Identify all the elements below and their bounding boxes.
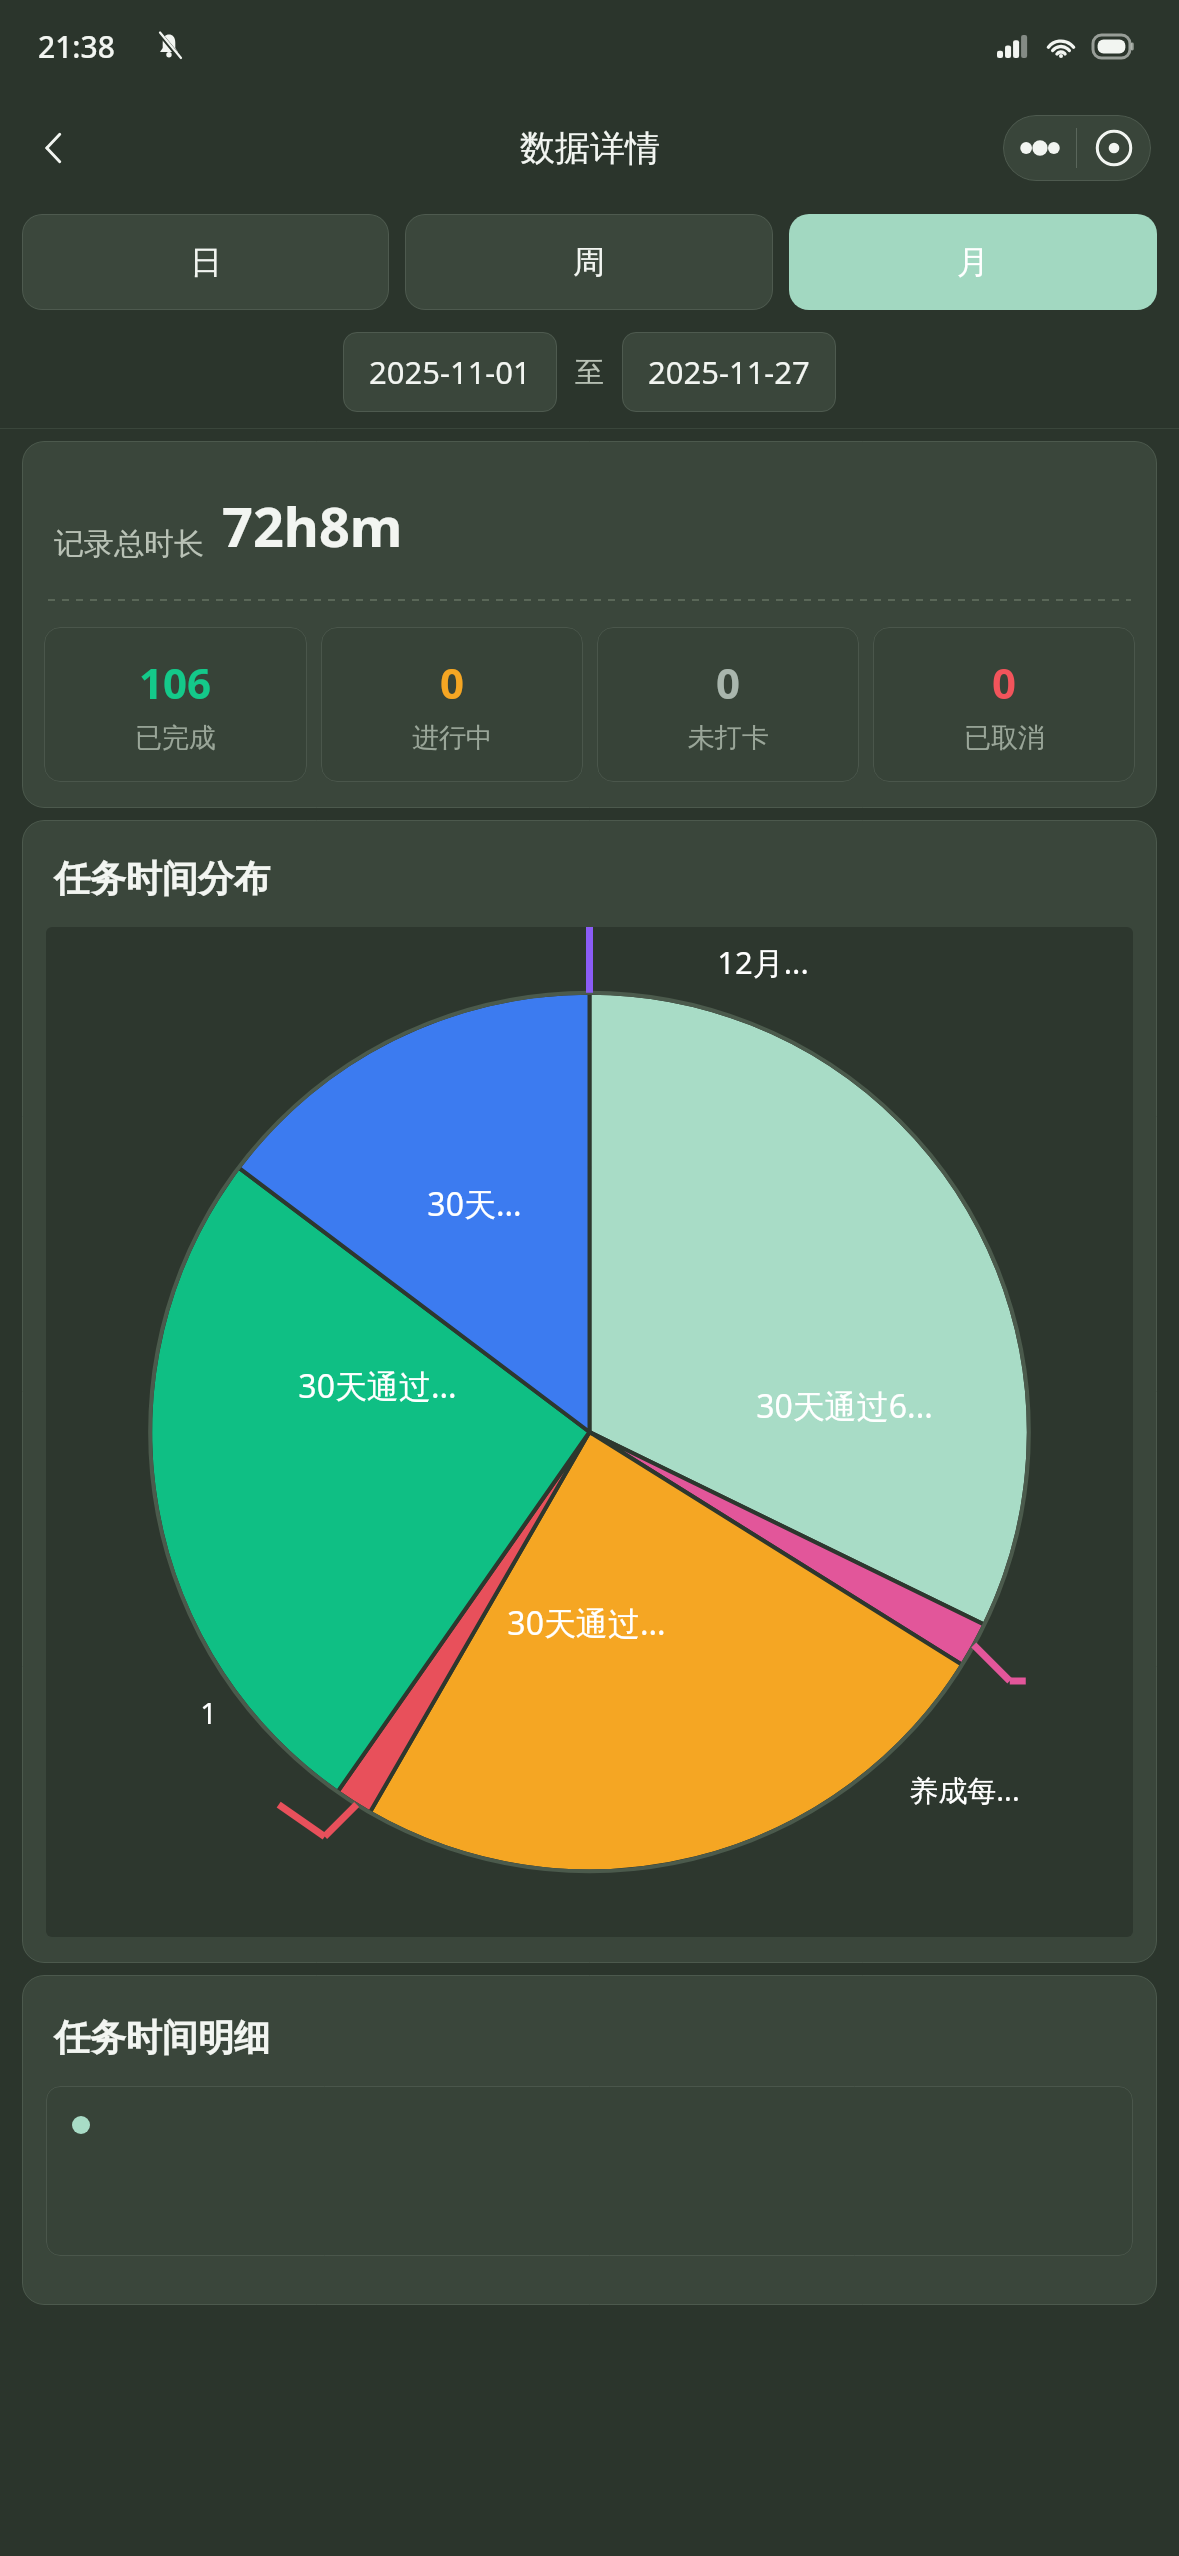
button[interactable]: 0: [873, 627, 1135, 782]
button[interactable]: 周: [405, 214, 773, 310]
button[interactable]: 106: [44, 627, 307, 782]
staticText: 任务时间明细: [54, 2015, 270, 2060]
staticText: 30天通过6...: [756, 1384, 933, 1428]
staticText: 已完成: [135, 721, 216, 755]
staticText: 进行中: [412, 721, 493, 755]
button[interactable]: 日: [22, 214, 389, 310]
button[interactable]: 月: [789, 214, 1157, 310]
staticText: 1: [200, 1693, 217, 1732]
staticText: 21:38: [38, 26, 115, 67]
staticText: 数据详情: [520, 126, 660, 170]
staticText: 106: [139, 654, 212, 711]
staticText: 记录总时长: [54, 525, 204, 563]
staticText: 0: [716, 654, 741, 711]
staticText: 12月...: [717, 941, 809, 983]
staticText: 2025-11-27: [648, 351, 810, 393]
staticText: 月: [957, 242, 989, 282]
staticText: 任务时间分布: [54, 856, 270, 901]
button[interactable]: Close: [1077, 115, 1151, 181]
staticText: 72h8m: [222, 489, 403, 563]
staticText: 已取消: [964, 721, 1045, 755]
staticText: 2025-11-01: [369, 351, 531, 393]
staticText: 0: [992, 654, 1017, 711]
staticText: 未打卡: [688, 721, 769, 755]
button[interactable]: 2025-11-27: [622, 332, 836, 412]
staticText: 30天...: [427, 1182, 522, 1226]
staticText: 30天通过...: [298, 1364, 457, 1408]
staticText: 周: [573, 242, 605, 282]
button[interactable]: 2025-11-01: [343, 332, 557, 412]
staticText: 0: [440, 654, 465, 711]
staticText: 30天通过...: [507, 1601, 666, 1645]
button[interactable]: 0: [321, 627, 583, 782]
staticText: 至: [575, 354, 604, 391]
button[interactable]: 0: [597, 627, 859, 782]
button[interactable]: More options: [1003, 115, 1076, 181]
staticText: 养成每...: [909, 1770, 1020, 1810]
button[interactable]: [46, 2086, 1133, 2256]
staticText: 日: [190, 242, 222, 282]
button[interactable]: Back: [18, 112, 90, 184]
